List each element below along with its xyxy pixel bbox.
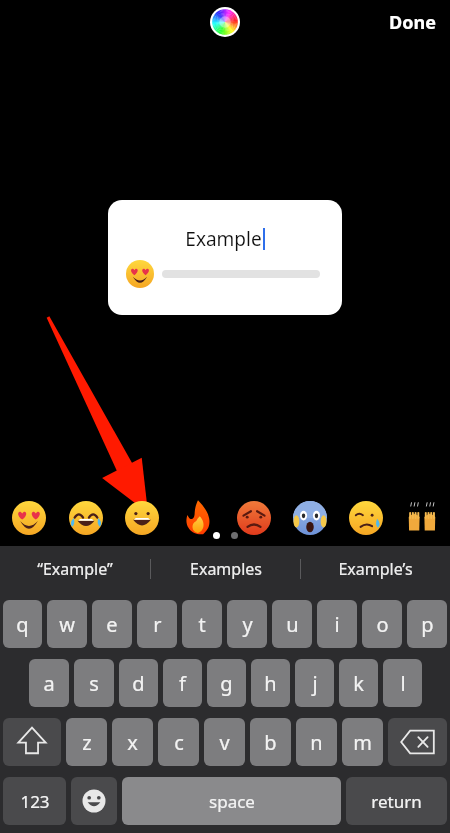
staticText: Done <box>389 10 436 35</box>
button[interactable]: z <box>66 718 107 766</box>
button[interactable]: o <box>362 600 402 648</box>
staticText: space <box>209 790 255 813</box>
staticText: h <box>264 670 277 697</box>
button[interactable]: y <box>227 600 267 648</box>
staticText: e <box>106 611 118 638</box>
button[interactable]: k <box>339 659 378 707</box>
staticText: p <box>421 611 434 638</box>
staticText: q <box>16 611 29 638</box>
staticText: o <box>376 611 389 638</box>
button[interactable]: c <box>158 718 199 766</box>
button[interactable]: Examples <box>151 546 300 592</box>
staticText: x <box>127 729 138 756</box>
button[interactable]: Screaming <box>282 494 338 542</box>
staticText: w <box>59 611 75 638</box>
staticText: y <box>242 611 253 638</box>
button[interactable]: m <box>342 718 383 766</box>
staticText: a <box>43 670 55 697</box>
staticText: j <box>312 670 318 697</box>
button[interactable]: Delete <box>388 718 447 766</box>
button[interactable]: Tears of joy <box>57 494 114 542</box>
button[interactable]: j <box>295 659 334 707</box>
button[interactable]: Color picker <box>210 7 240 37</box>
button[interactable]: b <box>250 718 291 766</box>
button[interactable]: return <box>346 777 447 825</box>
staticText: u <box>286 611 299 638</box>
button[interactable]: Example <box>108 200 342 315</box>
button[interactable]: u <box>272 600 312 648</box>
button[interactable]: g <box>207 659 246 707</box>
staticText: return <box>371 790 422 813</box>
staticText: z <box>82 729 92 756</box>
button[interactable]: d <box>119 659 158 707</box>
button[interactable]: Done <box>389 10 436 35</box>
button[interactable]: f <box>163 659 202 707</box>
staticText: d <box>132 670 145 697</box>
staticText: Example’s <box>338 558 413 580</box>
button[interactable]: h <box>251 659 290 707</box>
button[interactable]: “Example” <box>0 546 150 592</box>
button[interactable]: Fire <box>170 494 226 542</box>
button[interactable]: x <box>112 718 153 766</box>
staticText: f <box>179 670 186 697</box>
staticText: s <box>89 670 99 697</box>
staticText: g <box>220 670 233 697</box>
staticText: Example <box>185 226 262 252</box>
button[interactable]: v <box>204 718 245 766</box>
button[interactable]: p <box>407 600 447 648</box>
button[interactable]: space <box>122 777 341 825</box>
button[interactable]: Example’s <box>301 546 450 592</box>
button[interactable]: t <box>182 600 222 648</box>
button[interactable]: Emoji keyboard <box>71 777 117 825</box>
button[interactable]: w <box>47 600 87 648</box>
button[interactable]: r <box>137 600 177 648</box>
staticText: i <box>334 611 340 638</box>
button[interactable]: i <box>317 600 357 648</box>
button[interactable]: s <box>74 659 114 707</box>
button[interactable]: n <box>296 718 337 766</box>
button[interactable]: Grinning <box>114 494 170 542</box>
staticText: t <box>198 611 206 638</box>
button[interactable]: Heart eyes <box>0 494 57 542</box>
staticText: c <box>174 729 184 756</box>
staticText: “Example” <box>37 558 113 580</box>
button[interactable]: e <box>92 600 132 648</box>
staticText: m <box>353 729 372 756</box>
staticText: n <box>310 729 323 756</box>
button[interactable]: q <box>3 600 42 648</box>
button[interactable]: 123 <box>3 777 66 825</box>
button[interactable]: a <box>29 659 69 707</box>
button[interactable]: Crying <box>338 494 394 542</box>
button[interactable]: l <box>383 659 422 707</box>
staticText: Examples <box>190 558 262 580</box>
staticText: k <box>353 670 364 697</box>
button[interactable]: Shift <box>3 718 61 766</box>
staticText: r <box>153 611 162 638</box>
staticText: b <box>264 729 277 756</box>
staticText: 123 <box>20 790 50 813</box>
button[interactable]: Angry <box>226 494 282 542</box>
staticText: v <box>219 729 230 756</box>
staticText: l <box>400 670 406 697</box>
button[interactable]: Raised hands <box>394 494 450 542</box>
